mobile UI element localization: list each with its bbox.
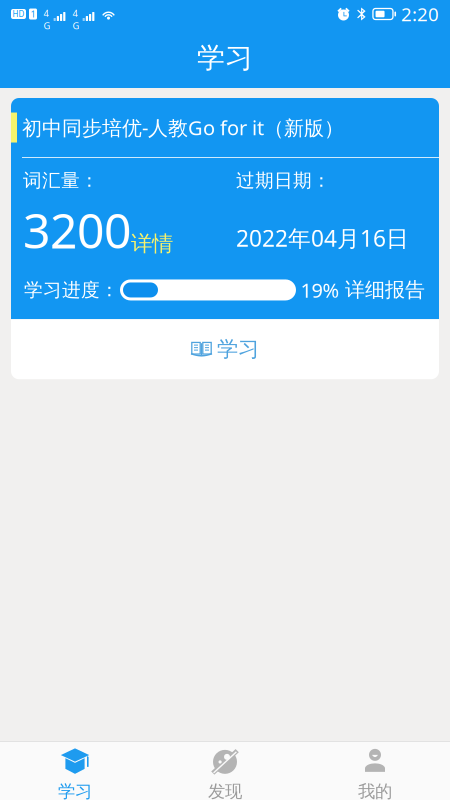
staticText: 3200 — [23, 198, 131, 262]
staticText: 我的 — [358, 781, 392, 800]
staticText: 学习 — [58, 781, 92, 800]
staticText: HD — [12, 9, 24, 19]
staticText: 学习 — [217, 336, 259, 362]
staticText: 初中同步培优-人教Go for it（新版） — [22, 114, 344, 141]
staticText: 2:20 — [401, 2, 439, 26]
staticText: 学习 — [197, 41, 253, 75]
staticText: 1 — [30, 8, 35, 20]
button[interactable]: 学习 — [11, 319, 439, 379]
button[interactable]: 我的 — [300, 742, 450, 800]
staticText: 详情 — [131, 230, 173, 257]
staticText: 词汇量： — [23, 169, 99, 192]
staticText: 过期日期： — [236, 169, 331, 192]
staticText: 学习进度： — [24, 278, 119, 301]
staticText: 详细报告 — [345, 278, 425, 302]
staticText: 4G — [73, 7, 80, 32]
button[interactable]: 发现 — [150, 742, 300, 800]
staticText: 2022年04月16日 — [236, 223, 409, 253]
button[interactable]: 学习 — [0, 742, 150, 800]
staticText: 4G — [44, 7, 51, 32]
staticText: 19% — [300, 277, 339, 303]
staticText: 发现 — [208, 781, 242, 800]
